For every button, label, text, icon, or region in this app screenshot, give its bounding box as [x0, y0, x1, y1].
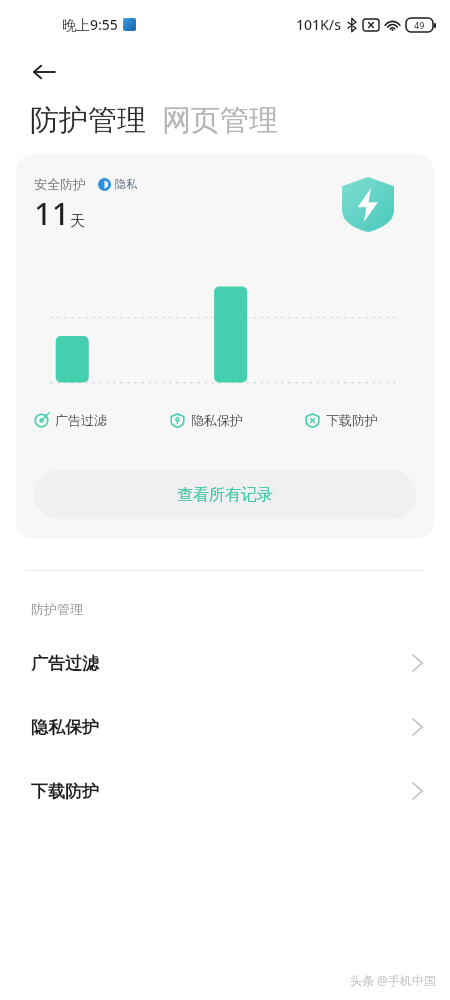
staticText: 隐私保护 — [191, 412, 243, 428]
staticText: 隐私 — [115, 177, 137, 191]
button[interactable]: 防护管理 — [30, 102, 146, 139]
button[interactable]: 隐私保护 — [0, 695, 450, 759]
staticText: 头条 @手机中国 — [350, 972, 436, 988]
button[interactable]: 广告过滤 — [0, 631, 450, 695]
staticText: 101K/s — [296, 15, 342, 34]
staticText: 11 — [34, 192, 70, 234]
staticText: 网页管理 — [162, 102, 278, 139]
staticText: 下载防护 — [326, 412, 378, 428]
staticText: 广告过滤 — [55, 412, 107, 428]
staticText: 下载防护 — [31, 781, 99, 802]
button[interactable]: 查看所有记录 — [34, 470, 416, 519]
staticText: 安全防护 — [34, 176, 86, 192]
staticText: 防护管理 — [31, 601, 83, 617]
staticText: 晚上9:55 — [62, 15, 118, 34]
staticText: 49 — [414, 19, 425, 31]
staticText: 防护管理 — [30, 102, 146, 139]
button[interactable]: 下载防护 — [0, 759, 450, 823]
staticText: 天 — [70, 212, 85, 231]
button[interactable]: Back — [20, 48, 68, 96]
button[interactable]: 网页管理 — [162, 102, 278, 139]
staticText: 查看所有记录 — [177, 485, 273, 505]
staticText: 广告过滤 — [31, 653, 99, 674]
staticText: 隐私保护 — [31, 717, 99, 738]
